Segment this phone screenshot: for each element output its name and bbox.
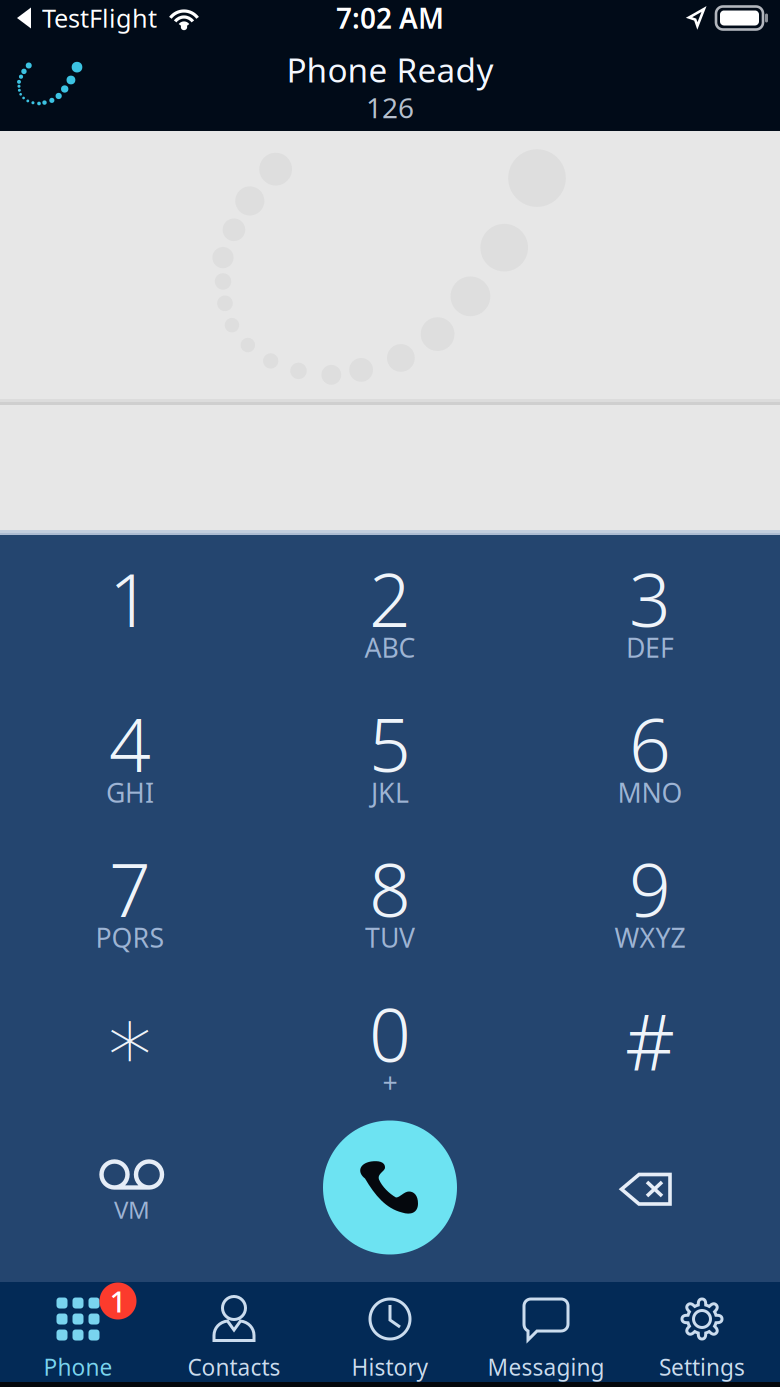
staticText: 7 [109,840,151,937]
button[interactable]: 1 [0,535,260,680]
staticText: GHI [106,775,154,810]
staticText [646,1065,653,1100]
staticText: Phone [43,1352,112,1382]
staticText: TestFlight [42,1,157,35]
staticText: 0 [369,985,411,1082]
staticText: Messaging [487,1352,604,1382]
staticText: 9 [629,840,671,937]
staticText: 4 [109,695,151,792]
staticText: 1 [109,550,151,647]
staticText: PQRS [95,920,164,955]
staticText: 7:02 AM [336,0,444,37]
button[interactable]: 2 [260,535,520,680]
button[interactable]: 7 [0,825,260,970]
staticText: # [625,989,675,1092]
staticText: 126 [366,89,414,126]
staticText: 8 [369,840,411,937]
button[interactable]: Voicemail [0,1104,260,1271]
staticText: WXYZ [614,920,685,955]
button[interactable]: Contacts [156,1282,312,1382]
button[interactable]: 5 [260,680,520,825]
button[interactable]: 1 [0,1282,156,1382]
staticText: ABC [364,630,415,665]
staticText: History [351,1352,428,1382]
staticText: MNO [617,775,682,810]
staticText: Settings [659,1352,745,1382]
staticText: 3 [629,550,671,647]
staticText: Contacts [187,1352,280,1382]
staticText: Phone Ready [286,47,493,92]
button[interactable]: 8 [260,825,520,970]
button[interactable]: Call [260,1104,520,1271]
staticText: 2 [369,550,411,647]
button[interactable]: 0 [260,970,520,1115]
button[interactable]: 6 [520,680,780,825]
staticText: + [382,1065,397,1100]
staticText: 1 [109,1281,126,1320]
button[interactable]: 9 [520,825,780,970]
staticText: TUV [365,920,415,955]
staticText: 5 [369,695,411,792]
staticText: 6 [629,695,671,792]
button[interactable]: 4 [0,680,260,825]
staticText: ∗ [102,989,157,1088]
staticText: DEF [626,630,674,665]
button[interactable]: ∗ [0,970,260,1115]
button[interactable]: Messaging [468,1282,624,1382]
button[interactable]: Back to TestFlight [0,1,157,35]
button[interactable]: Delete [520,1104,780,1271]
button[interactable]: 3 [520,535,780,680]
staticText: VM [114,1194,150,1225]
staticText: JKL [371,775,409,810]
button[interactable]: History [312,1282,468,1382]
button[interactable]: # [520,970,780,1115]
button[interactable]: Settings [624,1282,780,1382]
